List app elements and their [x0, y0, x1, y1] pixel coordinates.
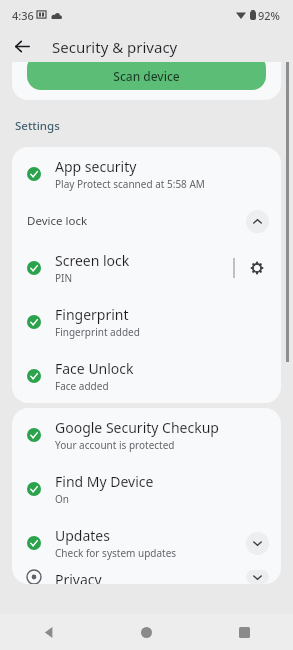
staticText: 92%: [258, 8, 280, 23]
staticText: Your account is protected: [55, 438, 175, 452]
button[interactable]: Updates: [12, 516, 281, 570]
staticText: Face Unlock: [55, 359, 134, 378]
staticText: On: [55, 492, 69, 506]
staticText: Scan device: [113, 68, 180, 84]
button[interactable]: Find My Device: [12, 462, 281, 516]
staticText: Screen lock: [55, 251, 130, 270]
staticText: Face added: [55, 379, 109, 393]
staticText: Updates: [55, 526, 110, 545]
button[interactable]: Screen lock: [12, 241, 281, 295]
button[interactable]: Privacy: [12, 570, 281, 584]
button[interactable]: Recent apps: [195, 614, 293, 650]
staticText: Google Security Checkup: [55, 418, 219, 437]
staticText: Privacy: [55, 570, 102, 584]
button[interactable]: Screen lock settings: [245, 256, 269, 280]
button[interactable]: Fingerprint: [12, 295, 281, 349]
button[interactable]: Google Security Checkup: [12, 408, 281, 462]
staticText: Fingerprint: [55, 305, 129, 324]
staticText: App security: [55, 157, 137, 176]
staticText: Fingerprint added: [55, 325, 140, 339]
button[interactable]: Home: [97, 614, 195, 650]
button[interactable]: Back: [8, 32, 36, 60]
staticText: Check for system updates: [55, 546, 177, 560]
button[interactable]: Scan device: [27, 62, 266, 90]
button[interactable]: Back: [0, 614, 97, 650]
button[interactable]: Device lock: [12, 201, 281, 241]
button[interactable]: Face Unlock: [12, 349, 281, 403]
staticText: Settings: [15, 118, 60, 134]
staticText: Play Protect scanned at 5:58 AM: [55, 177, 205, 191]
staticText: Security & privacy: [52, 37, 178, 57]
button[interactable]: App security: [12, 147, 281, 201]
staticText: Find My Device: [55, 472, 154, 491]
staticText: PIN: [55, 271, 73, 285]
staticText: 4:36: [12, 8, 34, 23]
staticText: Device lock: [27, 213, 246, 229]
